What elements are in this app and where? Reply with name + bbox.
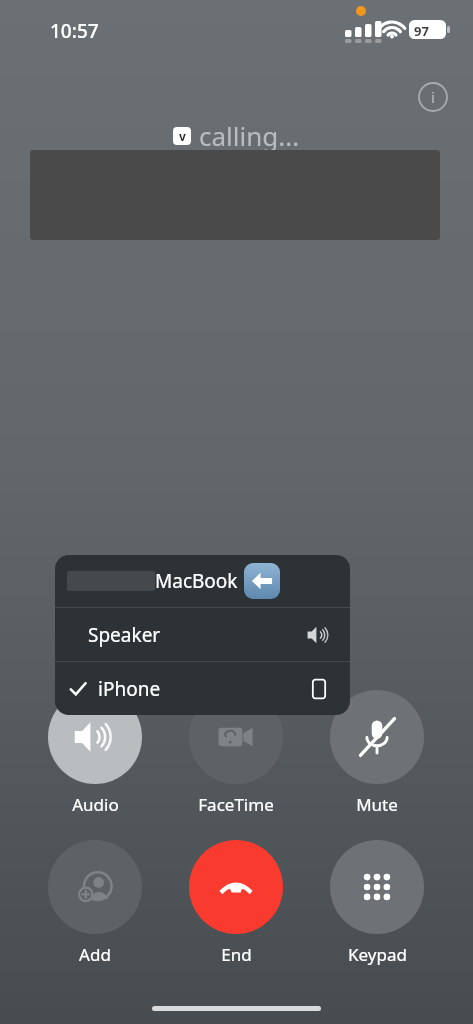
staticText: Add — [79, 943, 111, 966]
button[interactable]: iPhone — [55, 662, 350, 715]
staticText: calling... — [199, 118, 300, 153]
staticText: Mute — [356, 793, 398, 816]
staticText: 97 — [414, 22, 429, 40]
button[interactable]: Audio — [48, 690, 142, 816]
button[interactable]: End — [189, 840, 283, 966]
button[interactable]: Add — [48, 840, 142, 966]
staticText: End — [221, 943, 252, 966]
button[interactable]: Speaker — [55, 608, 350, 661]
button[interactable]: MacBook — [55, 555, 350, 607]
staticText: Audio — [72, 793, 119, 816]
button[interactable]: Route audio back — [244, 563, 280, 599]
button[interactable]: Keypad — [330, 840, 424, 966]
staticText: FaceTime — [198, 793, 274, 816]
staticText: MacBook — [155, 568, 238, 594]
staticText: 10:57 — [50, 18, 99, 44]
staticText: Keypad — [348, 943, 407, 966]
staticText: iPhone — [98, 676, 161, 702]
staticText: Speaker — [88, 622, 161, 648]
button[interactable]: FaceTime — [189, 690, 283, 816]
staticText: v — [179, 128, 186, 144]
button[interactable]: Mute — [330, 690, 424, 816]
button[interactable]: Call info — [415, 79, 451, 115]
staticText: i — [431, 87, 435, 107]
